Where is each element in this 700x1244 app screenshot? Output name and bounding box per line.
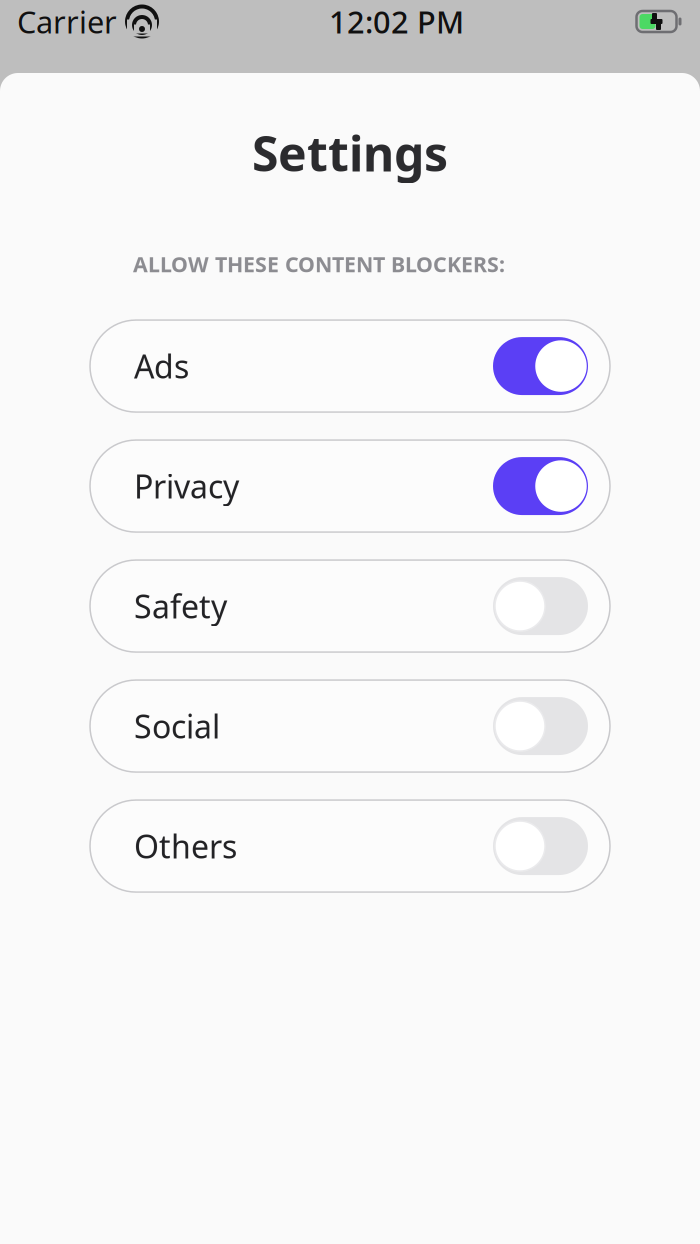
staticText: 12:02 PM	[329, 1, 464, 42]
button[interactable]: Safety	[90, 560, 610, 652]
staticText: Carrier	[17, 1, 117, 42]
staticText: Privacy	[134, 465, 239, 507]
button[interactable]: Ads	[90, 320, 610, 412]
staticText: Settings	[252, 121, 448, 185]
staticText: Social	[134, 705, 220, 747]
button[interactable]: Others	[90, 800, 610, 892]
staticText: ALLOW THESE CONTENT BLOCKERS:	[133, 250, 505, 278]
staticText: Safety	[134, 585, 227, 627]
staticText: Ads	[134, 345, 189, 387]
staticText: Others	[134, 825, 237, 867]
button[interactable]: Privacy	[90, 440, 610, 532]
button[interactable]: Social	[90, 680, 610, 772]
